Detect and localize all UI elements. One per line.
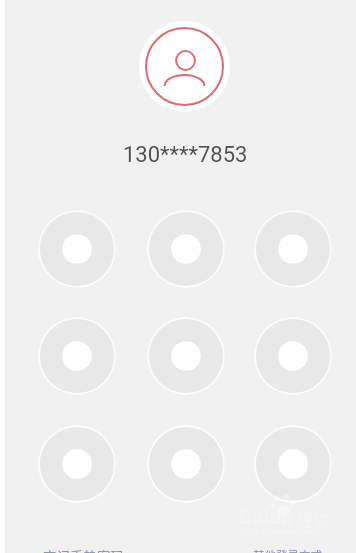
button[interactable]: Other login <box>253 547 322 553</box>
button[interactable]: Pattern dot <box>38 425 116 503</box>
button[interactable]: Pattern dot <box>254 210 332 288</box>
staticText: 忘记手势密码 <box>43 546 124 553</box>
button[interactable]: Pattern dot <box>147 317 225 395</box>
staticText: 其他登录方式 <box>253 547 322 553</box>
button[interactable]: Pattern dot <box>254 317 332 395</box>
button[interactable]: Account avatar <box>139 21 230 112</box>
button[interactable]: Pattern dot <box>147 210 225 288</box>
staticText: 130****7853 <box>123 142 248 168</box>
button[interactable]: Pattern dot <box>38 317 116 395</box>
button[interactable]: Pattern dot <box>38 210 116 288</box>
button[interactable]: Pattern dot <box>147 425 225 503</box>
button[interactable]: Pattern dot <box>254 425 332 503</box>
button[interactable]: Forgot gesture password <box>43 546 124 553</box>
